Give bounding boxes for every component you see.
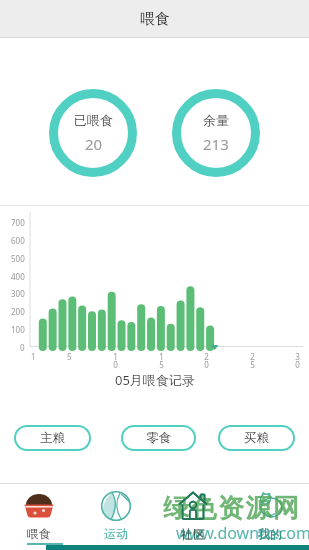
staticText: 余量 [203, 112, 229, 128]
button[interactable]: 运动 [77, 484, 154, 550]
staticText: 3 0 [295, 351, 300, 370]
staticText: 100 [11, 324, 25, 334]
button[interactable]: 喂食 [0, 484, 77, 550]
staticText: 700 [11, 217, 25, 227]
button[interactable]: 买粮 [218, 425, 295, 451]
staticText: 主粮 [40, 430, 65, 446]
staticText: 2 5 [250, 351, 255, 370]
staticText: 1 5 [159, 351, 164, 370]
staticText: 已喂食 [74, 112, 113, 128]
button[interactable]: 已喂食 [49, 89, 137, 177]
staticText: 2 0 [204, 351, 209, 370]
staticText: 400 [11, 271, 25, 281]
staticText: 600 [11, 235, 25, 245]
staticText: 05月喂食记录 [115, 371, 195, 389]
staticText: 300 [11, 288, 25, 298]
staticText: 0 [20, 342, 25, 352]
staticText: 我的 [258, 526, 282, 541]
staticText: www.downcc.com [176, 522, 309, 544]
staticText: 零食 [146, 430, 171, 446]
staticText: 喂食 [27, 526, 51, 541]
staticText: 1 0 [113, 351, 118, 370]
staticText: 213 [203, 134, 229, 154]
staticText: 喂食 [140, 10, 170, 29]
button[interactable]: 零食 [121, 425, 196, 451]
button[interactable]: 我的 [231, 484, 308, 550]
staticText: 20 [85, 134, 103, 154]
button[interactable]: 主粮 [14, 425, 91, 451]
staticText: 500 [11, 253, 25, 263]
staticText: 我的 [258, 527, 282, 542]
staticText: 买粮 [244, 430, 269, 446]
button[interactable]: 社区 [154, 484, 231, 550]
staticText: 社区 [181, 527, 205, 542]
staticText: 运动 [104, 526, 128, 541]
staticText: 5 [67, 351, 72, 362]
staticText: 200 [11, 306, 25, 316]
staticText: 社区 [181, 526, 205, 541]
button[interactable]: 余量 [172, 89, 260, 177]
staticText: 绿色资源网 [163, 492, 301, 525]
staticText: 1 [31, 351, 36, 362]
